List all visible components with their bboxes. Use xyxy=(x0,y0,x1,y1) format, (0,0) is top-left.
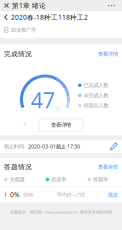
button[interactable]: 查看全部 xyxy=(98,164,118,170)
staticText: 主观题 xyxy=(9,176,24,183)
staticText: 58 xyxy=(64,121,68,127)
staticText: 2020-03-01截止 17:30 xyxy=(28,143,80,150)
button[interactable]: 查看详情 xyxy=(98,51,118,57)
button[interactable]: More xyxy=(105,1,118,9)
button[interactable]: 查看详情 xyxy=(39,119,83,131)
staticText: 查看全部 xyxy=(98,164,118,170)
staticText: 查看详情 xyxy=(98,51,118,57)
staticText: 平均分 --/10 xyxy=(56,191,84,198)
staticText: 1 xyxy=(4,191,7,198)
staticText: 已完成人数 xyxy=(83,82,108,89)
button[interactable]: Back xyxy=(4,14,8,20)
staticText: 温馨提示：网页版（www.yuketang.cn）拥有更多精彩功能 xyxy=(10,209,112,214)
button[interactable]: 截止时间 xyxy=(0,140,122,153)
staticText: 第1章 绪论 xyxy=(12,1,46,10)
staticText: 批改 xyxy=(108,191,118,198)
staticText: 截止时间 xyxy=(4,143,24,150)
staticText: 0% xyxy=(10,190,20,199)
staticText: 查看详情 xyxy=(51,122,71,128)
button[interactable]: Close xyxy=(4,3,9,8)
staticText: 班级总人数 xyxy=(83,102,108,109)
staticText: 答题情况 xyxy=(4,163,32,171)
button[interactable]: 批改 xyxy=(108,191,118,198)
staticText: 批改率 xyxy=(51,176,66,183)
staticText: 完成情况 xyxy=(4,50,32,58)
staticText: 人 xyxy=(55,106,60,112)
staticText: 47 xyxy=(31,86,55,114)
staticText: 0 xyxy=(23,121,25,127)
staticText: 农业推广学 xyxy=(11,27,36,33)
staticText: 2020春-18种工118种工2 xyxy=(11,13,88,22)
staticText: 90% xyxy=(23,191,33,198)
staticText: 答题率 xyxy=(93,176,108,183)
staticText: 未完成人数 xyxy=(83,92,108,99)
